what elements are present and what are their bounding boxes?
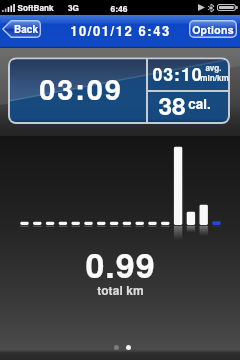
staticText: cal. [188, 94, 211, 113]
staticText: 3G [68, 2, 79, 14]
staticText: Options [192, 22, 234, 37]
staticText: 03:10 [152, 61, 203, 86]
other: Playing [198, 4, 205, 11]
button[interactable]: 38 [148, 92, 230, 122]
staticText: 6:46 [110, 2, 128, 14]
staticText: 38 [158, 87, 186, 117]
staticText: 03:09 [39, 67, 123, 109]
staticText: SoftBank [17, 2, 54, 14]
other: Bluetooth [208, 4, 214, 12]
staticText: Back [14, 22, 38, 36]
staticText: 0.99 [85, 240, 156, 289]
staticText: avg. [205, 62, 222, 74]
button[interactable]: 03:09 [10, 60, 146, 123]
other: Battery [217, 4, 238, 11]
button[interactable]: Back [2, 20, 41, 38]
staticText: min/km [200, 72, 229, 84]
button[interactable]: 03:10 [148, 60, 230, 91]
staticText: 10/01/12 6:43 [70, 21, 171, 40]
staticText: total km [97, 281, 144, 298]
button[interactable]: Options [189, 20, 237, 38]
